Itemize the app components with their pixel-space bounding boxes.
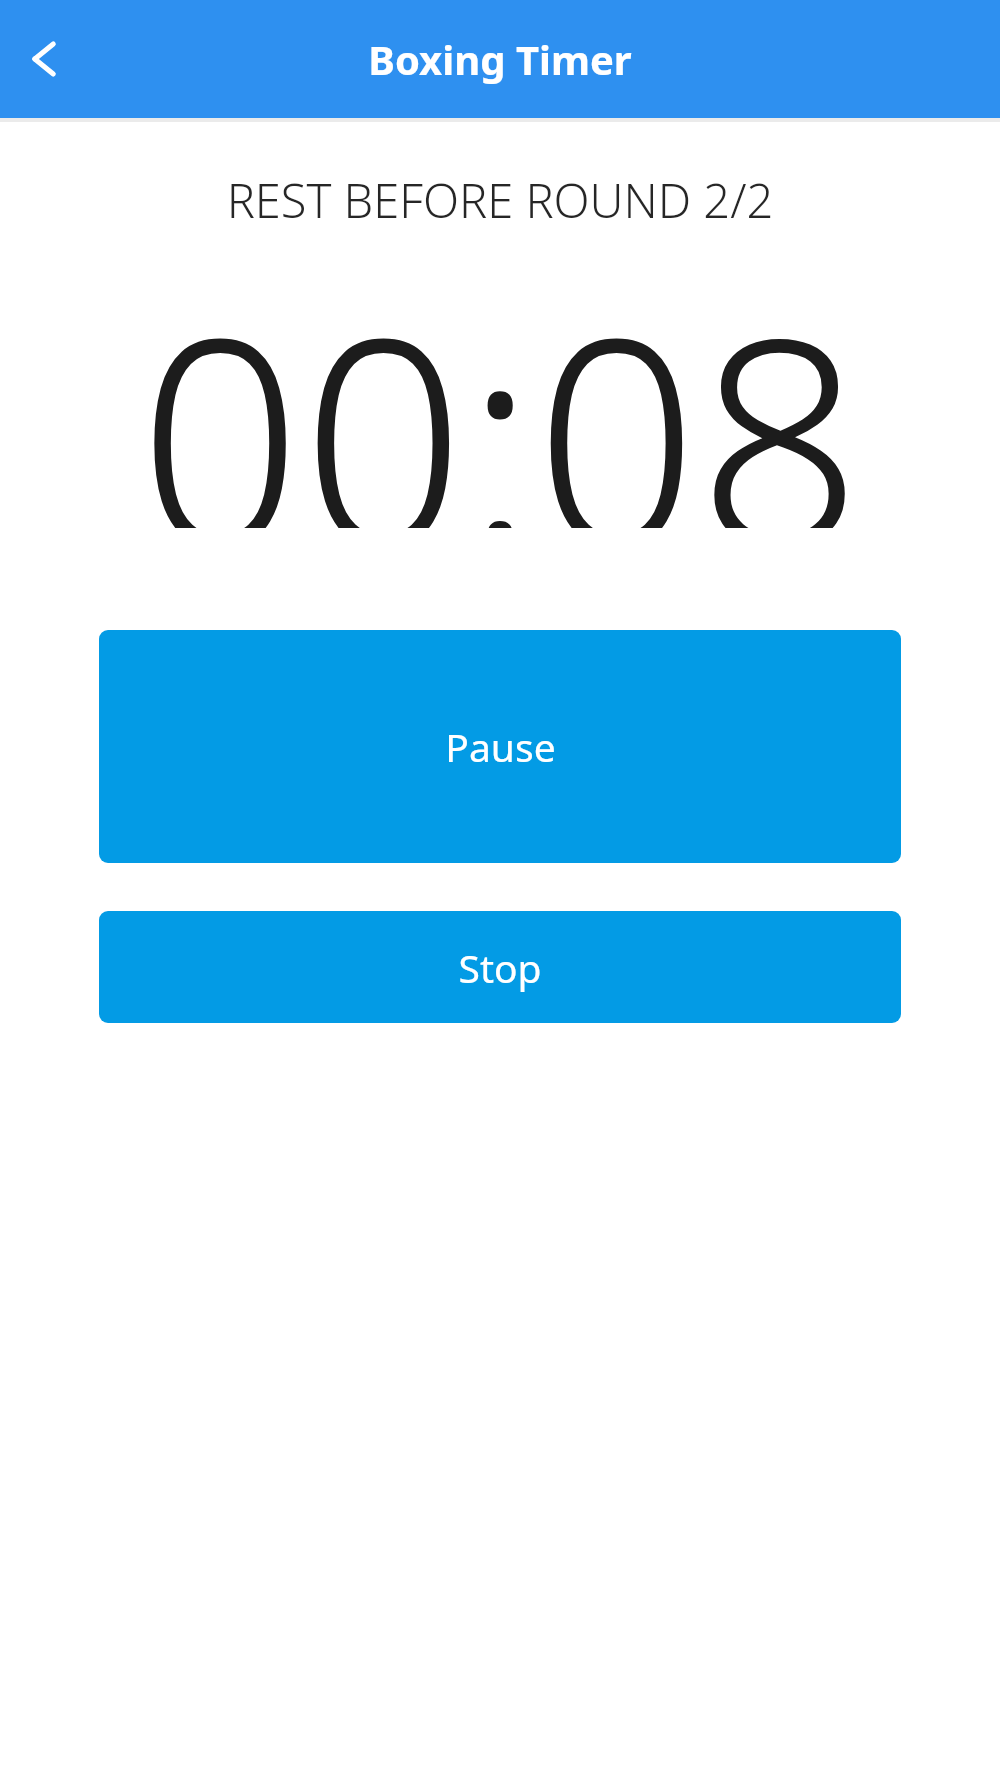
button[interactable]: Back [6, 17, 90, 101]
staticText: REST BEFORE ROUND 2/2 [0, 168, 1000, 232]
staticText: 00:08 [0, 240, 1000, 528]
button[interactable]: Stop [99, 911, 901, 1023]
staticText: Stop [458, 941, 542, 994]
staticText: Pause [445, 720, 556, 773]
button[interactable]: Pause [99, 630, 901, 863]
staticText: Boxing Timer [368, 32, 632, 86]
